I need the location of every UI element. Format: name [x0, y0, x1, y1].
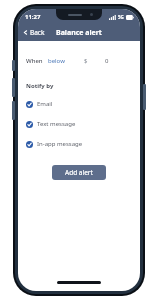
- staticText: $: [84, 57, 88, 65]
- staticText: 0: [105, 57, 109, 65]
- staticText: Notify by: [26, 82, 54, 90]
- staticText: below: [48, 57, 65, 65]
- button[interactable]: Back: [18, 25, 50, 40]
- button[interactable]: In-app message: [18, 139, 140, 149]
- button[interactable]: below: [47, 55, 66, 67]
- button[interactable]: Email: [18, 99, 140, 109]
- staticText: 11:27: [25, 13, 41, 21]
- staticText: When: [26, 57, 43, 65]
- button[interactable]: Add alert: [52, 165, 106, 180]
- staticText: 5G: [118, 14, 124, 20]
- button[interactable]: Text message: [18, 119, 140, 129]
- staticText: In-app message: [37, 140, 83, 148]
- staticText: Back: [30, 28, 45, 37]
- staticText: Email: [37, 100, 53, 108]
- staticText: Balance alert: [56, 28, 102, 38]
- staticText: Text message: [37, 120, 76, 128]
- staticText: Add alert: [65, 168, 93, 177]
